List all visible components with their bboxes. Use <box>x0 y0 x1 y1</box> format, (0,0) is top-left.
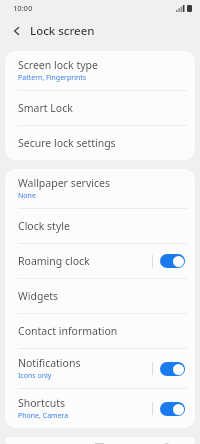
staticText: Clock style <box>18 219 70 233</box>
button[interactable]: Clock style <box>5 209 195 243</box>
button[interactable]: Contact information <box>5 314 195 348</box>
button[interactable]: Notifications switch <box>160 362 185 376</box>
button[interactable]: Roaming clock switch <box>160 254 185 268</box>
button[interactable]: About Lock screen <box>5 437 195 444</box>
button[interactable]: Roaming clock <box>5 244 195 278</box>
staticText: 10:00 <box>13 3 33 13</box>
button[interactable]: Wallpaper services <box>5 169 195 208</box>
staticText: Shortcuts <box>18 396 66 410</box>
button[interactable]: Notifications <box>5 349 195 388</box>
button[interactable]: Shortcuts switch <box>160 402 185 416</box>
staticText: Widgets <box>18 289 59 303</box>
staticText: Screen lock type <box>18 58 98 72</box>
button[interactable]: Shortcuts <box>5 389 195 428</box>
button[interactable]: Navigate up <box>6 20 28 42</box>
staticText: Contact information <box>18 324 118 338</box>
staticText: Wallpaper services <box>18 176 110 190</box>
staticText: Icons only <box>18 371 52 381</box>
button[interactable]: Widgets <box>5 279 195 313</box>
staticText: Secure lock settings <box>18 136 116 150</box>
button[interactable]: Smart Lock <box>5 91 195 125</box>
staticText: Notifications <box>18 356 81 370</box>
staticText: Smart Lock <box>18 101 73 115</box>
staticText: Roaming clock <box>18 254 90 268</box>
staticText: Phone, Camera <box>18 411 69 421</box>
button[interactable]: Secure lock settings <box>5 126 195 160</box>
button[interactable]: Screen lock type <box>5 51 195 90</box>
staticText: None <box>18 191 36 201</box>
staticText: Lock screen <box>30 23 95 39</box>
staticText: Pattern, Fingerprints <box>18 73 87 83</box>
